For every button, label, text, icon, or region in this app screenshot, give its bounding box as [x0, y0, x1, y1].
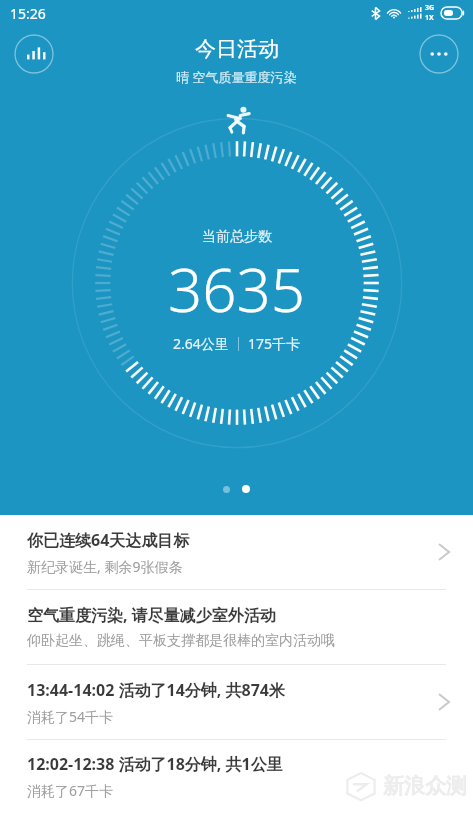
staticText: 消耗了67千卡	[27, 781, 114, 800]
staticText: 新浪众测	[383, 773, 467, 799]
button[interactable]: 12:02-12:38 活动了18分钟, 共1公里	[0, 740, 473, 813]
staticText: 晴 空气质量重度污染	[176, 68, 297, 86]
staticText: 空气重度污染, 请尽量减少室外活动	[27, 604, 276, 626]
button[interactable]: More options	[419, 34, 459, 74]
button[interactable]	[223, 486, 230, 493]
staticText: 12:02-12:38 活动了18分钟, 共1公里	[27, 753, 283, 775]
other: Activity	[221, 104, 253, 136]
staticText: 2.64公里	[173, 334, 229, 353]
staticText: 13:44-14:02 活动了14分钟, 共874米	[27, 679, 285, 701]
button[interactable]: 13:44-14:02 活动了14分钟, 共874米	[0, 665, 473, 739]
staticText: 15:26	[10, 4, 46, 23]
staticText: 当前总步数	[202, 228, 272, 246]
button[interactable]: 空气重度污染, 请尽量减少室外活动	[0, 590, 473, 664]
staticText: 仰卧起坐、跳绳、平板支撑都是很棒的室内活动哦	[27, 632, 335, 650]
staticText: 3635	[168, 248, 306, 330]
staticText: 175千卡	[248, 334, 301, 353]
staticText: 1X	[425, 13, 434, 23]
staticText: 3G	[425, 3, 435, 13]
staticText: 新纪录诞生, 剩余9张假条	[27, 557, 183, 576]
button[interactable]: Statistics	[14, 34, 54, 74]
button[interactable]	[242, 485, 250, 493]
button[interactable]: 你已连续64天达成目标	[0, 515, 473, 589]
staticText: 消耗了54千卡	[27, 707, 114, 726]
staticText: 今日活动	[195, 36, 279, 62]
staticText: 你已连续64天达成目标	[27, 529, 190, 551]
